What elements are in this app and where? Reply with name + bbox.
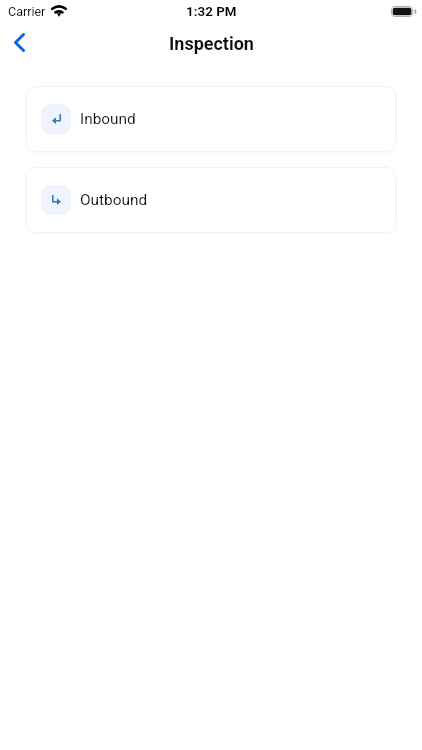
- staticText: Outbound: [80, 191, 148, 209]
- button[interactable]: Outbound: [26, 167, 396, 233]
- staticText: 1:32 PM: [186, 4, 237, 20]
- staticText: Inspection: [169, 33, 254, 54]
- staticText: Inbound: [80, 110, 136, 128]
- button[interactable]: Back: [0, 21, 40, 63]
- staticText: Carrier: [8, 4, 46, 19]
- button[interactable]: Inbound: [26, 86, 396, 152]
